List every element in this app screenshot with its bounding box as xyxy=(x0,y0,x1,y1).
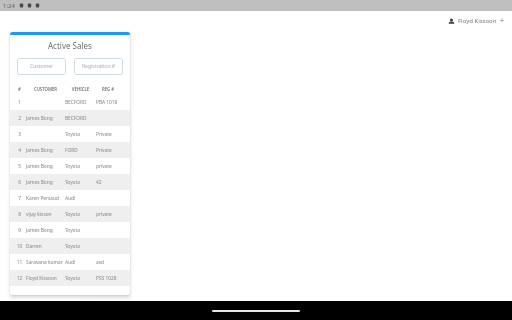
staticText: private xyxy=(96,163,120,170)
staticText: Floyd Kissoon xyxy=(26,275,65,282)
staticText: James Bong xyxy=(26,115,65,122)
staticText: 9 xyxy=(13,227,26,234)
staticText: 3 xyxy=(13,131,26,138)
staticText: vijay kisson xyxy=(26,211,65,218)
staticText: PSS 1028 xyxy=(96,275,120,282)
button[interactable]: Home xyxy=(212,310,300,312)
button[interactable]: 8 xyxy=(10,206,130,222)
staticText: 12 xyxy=(13,275,26,282)
staticText: 10 xyxy=(13,243,26,250)
button[interactable]: Customer xyxy=(17,58,66,75)
button[interactable]: 9 xyxy=(10,222,130,238)
staticText: # xyxy=(13,86,26,92)
staticText: private xyxy=(96,211,120,218)
staticText: REG # xyxy=(96,86,120,92)
staticText: Toyota xyxy=(65,227,96,234)
staticText: James Bong xyxy=(26,163,65,170)
staticText: James Bong xyxy=(26,179,65,186)
staticText: James Bong xyxy=(26,227,65,234)
staticText: VEHICLE xyxy=(65,86,96,92)
button[interactable]: 6 xyxy=(10,174,130,190)
button[interactable]: 3 xyxy=(10,126,130,142)
staticText: James Bong xyxy=(26,147,65,154)
staticText: 7 xyxy=(13,195,26,202)
staticText: Floyd Kissoon xyxy=(458,17,497,25)
button[interactable]: Account xyxy=(446,13,507,29)
staticText: Audi xyxy=(65,259,96,266)
button[interactable]: 5 xyxy=(10,158,130,174)
staticText: Toyota xyxy=(65,211,96,218)
staticText: Darren xyxy=(26,243,65,250)
staticText: Toyota xyxy=(65,163,96,170)
button[interactable]: 7 xyxy=(10,190,130,206)
staticText: Saravana kumar xyxy=(26,259,65,266)
staticText: 8 xyxy=(13,211,26,218)
staticText: Toyota xyxy=(65,179,96,186)
button[interactable]: Registration # xyxy=(74,58,123,75)
staticText: 4 xyxy=(13,147,26,154)
staticText: Registration # xyxy=(82,63,116,70)
staticText: 1:24 xyxy=(3,2,15,10)
staticText: Toyota xyxy=(65,131,96,138)
staticText: 6 xyxy=(13,179,26,186)
staticText: Karen Persaud xyxy=(26,195,65,202)
staticText: Active Sales xyxy=(48,40,92,51)
button[interactable]: 1 xyxy=(10,94,130,110)
staticText: Audi xyxy=(65,195,96,202)
staticText: FORD xyxy=(65,147,96,154)
button[interactable]: 10 xyxy=(10,238,130,254)
staticText: 2 xyxy=(13,115,26,122)
button[interactable]: 4 xyxy=(10,142,130,158)
staticText: Private xyxy=(96,147,120,154)
staticText: Private xyxy=(96,131,120,138)
staticText: Toyota xyxy=(65,275,96,282)
button[interactable]: 2 xyxy=(10,110,130,126)
staticText: 5 xyxy=(13,163,26,170)
staticText: BECFORD xyxy=(65,115,96,122)
staticText: 11 xyxy=(13,259,26,266)
staticText: + xyxy=(500,16,505,26)
other: Account xyxy=(448,18,455,25)
staticText: CUSTOMER xyxy=(26,86,65,92)
staticText: 1 xyxy=(13,99,26,106)
staticText: BECFORD xyxy=(65,99,96,106)
button[interactable]: 11 xyxy=(10,254,130,270)
button[interactable]: 12 xyxy=(10,270,130,286)
staticText: Toyota xyxy=(65,243,96,250)
staticText: Customer xyxy=(30,63,54,70)
staticText: asd xyxy=(96,259,120,266)
staticText: PBA 1018 xyxy=(96,99,120,106)
staticText: 42 xyxy=(96,179,120,186)
